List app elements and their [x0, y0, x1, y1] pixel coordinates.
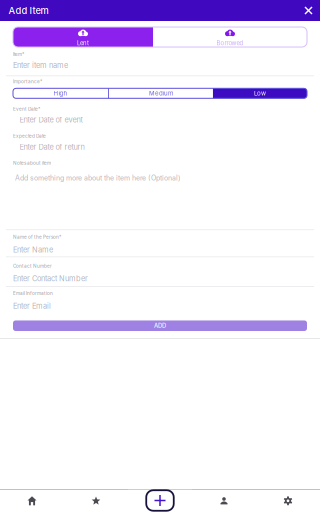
staticText: Enter Name — [13, 245, 53, 254]
staticText: Medium — [149, 90, 173, 97]
staticText: Lent — [77, 39, 89, 47]
staticText: Borrowed — [216, 39, 243, 47]
button[interactable]: Favorites — [64, 490, 128, 512]
button[interactable]: Settings — [256, 490, 320, 512]
button[interactable]: Lent — [13, 27, 153, 47]
staticText: Enter Email — [13, 301, 51, 310]
staticText: Enter Contact Number — [13, 274, 88, 283]
button[interactable]: ADD — [13, 320, 307, 331]
staticText: Name of the Person* — [13, 234, 61, 240]
staticText: High — [54, 90, 68, 97]
staticText: Expected Date — [13, 133, 46, 139]
staticText: Contact Number — [13, 263, 52, 269]
button[interactable]: Profile — [192, 490, 256, 512]
staticText: Low — [254, 90, 266, 97]
button[interactable]: Add item — [130, 489, 190, 512]
staticText: Email Information — [13, 291, 53, 296]
staticText: Notes about item — [13, 160, 51, 166]
staticText: ADD — [154, 322, 166, 329]
button[interactable]: Medium — [109, 88, 213, 98]
staticText: Enter Date of event — [19, 115, 82, 124]
button[interactable]: Close — [297, 0, 320, 21]
staticText: Enter item name — [13, 61, 68, 70]
staticText: Event Date* — [13, 106, 40, 112]
staticText: Importance* — [13, 79, 42, 84]
staticText: Add Item — [8, 5, 48, 16]
button[interactable]: Low — [213, 88, 307, 98]
button[interactable]: Home — [0, 490, 64, 512]
staticText: Item* — [13, 51, 24, 57]
staticText: Add something more about the item here (… — [15, 174, 181, 182]
button[interactable]: Borrowed — [153, 27, 307, 47]
staticText: Enter Date of return — [19, 142, 84, 151]
button[interactable]: High — [13, 88, 108, 98]
